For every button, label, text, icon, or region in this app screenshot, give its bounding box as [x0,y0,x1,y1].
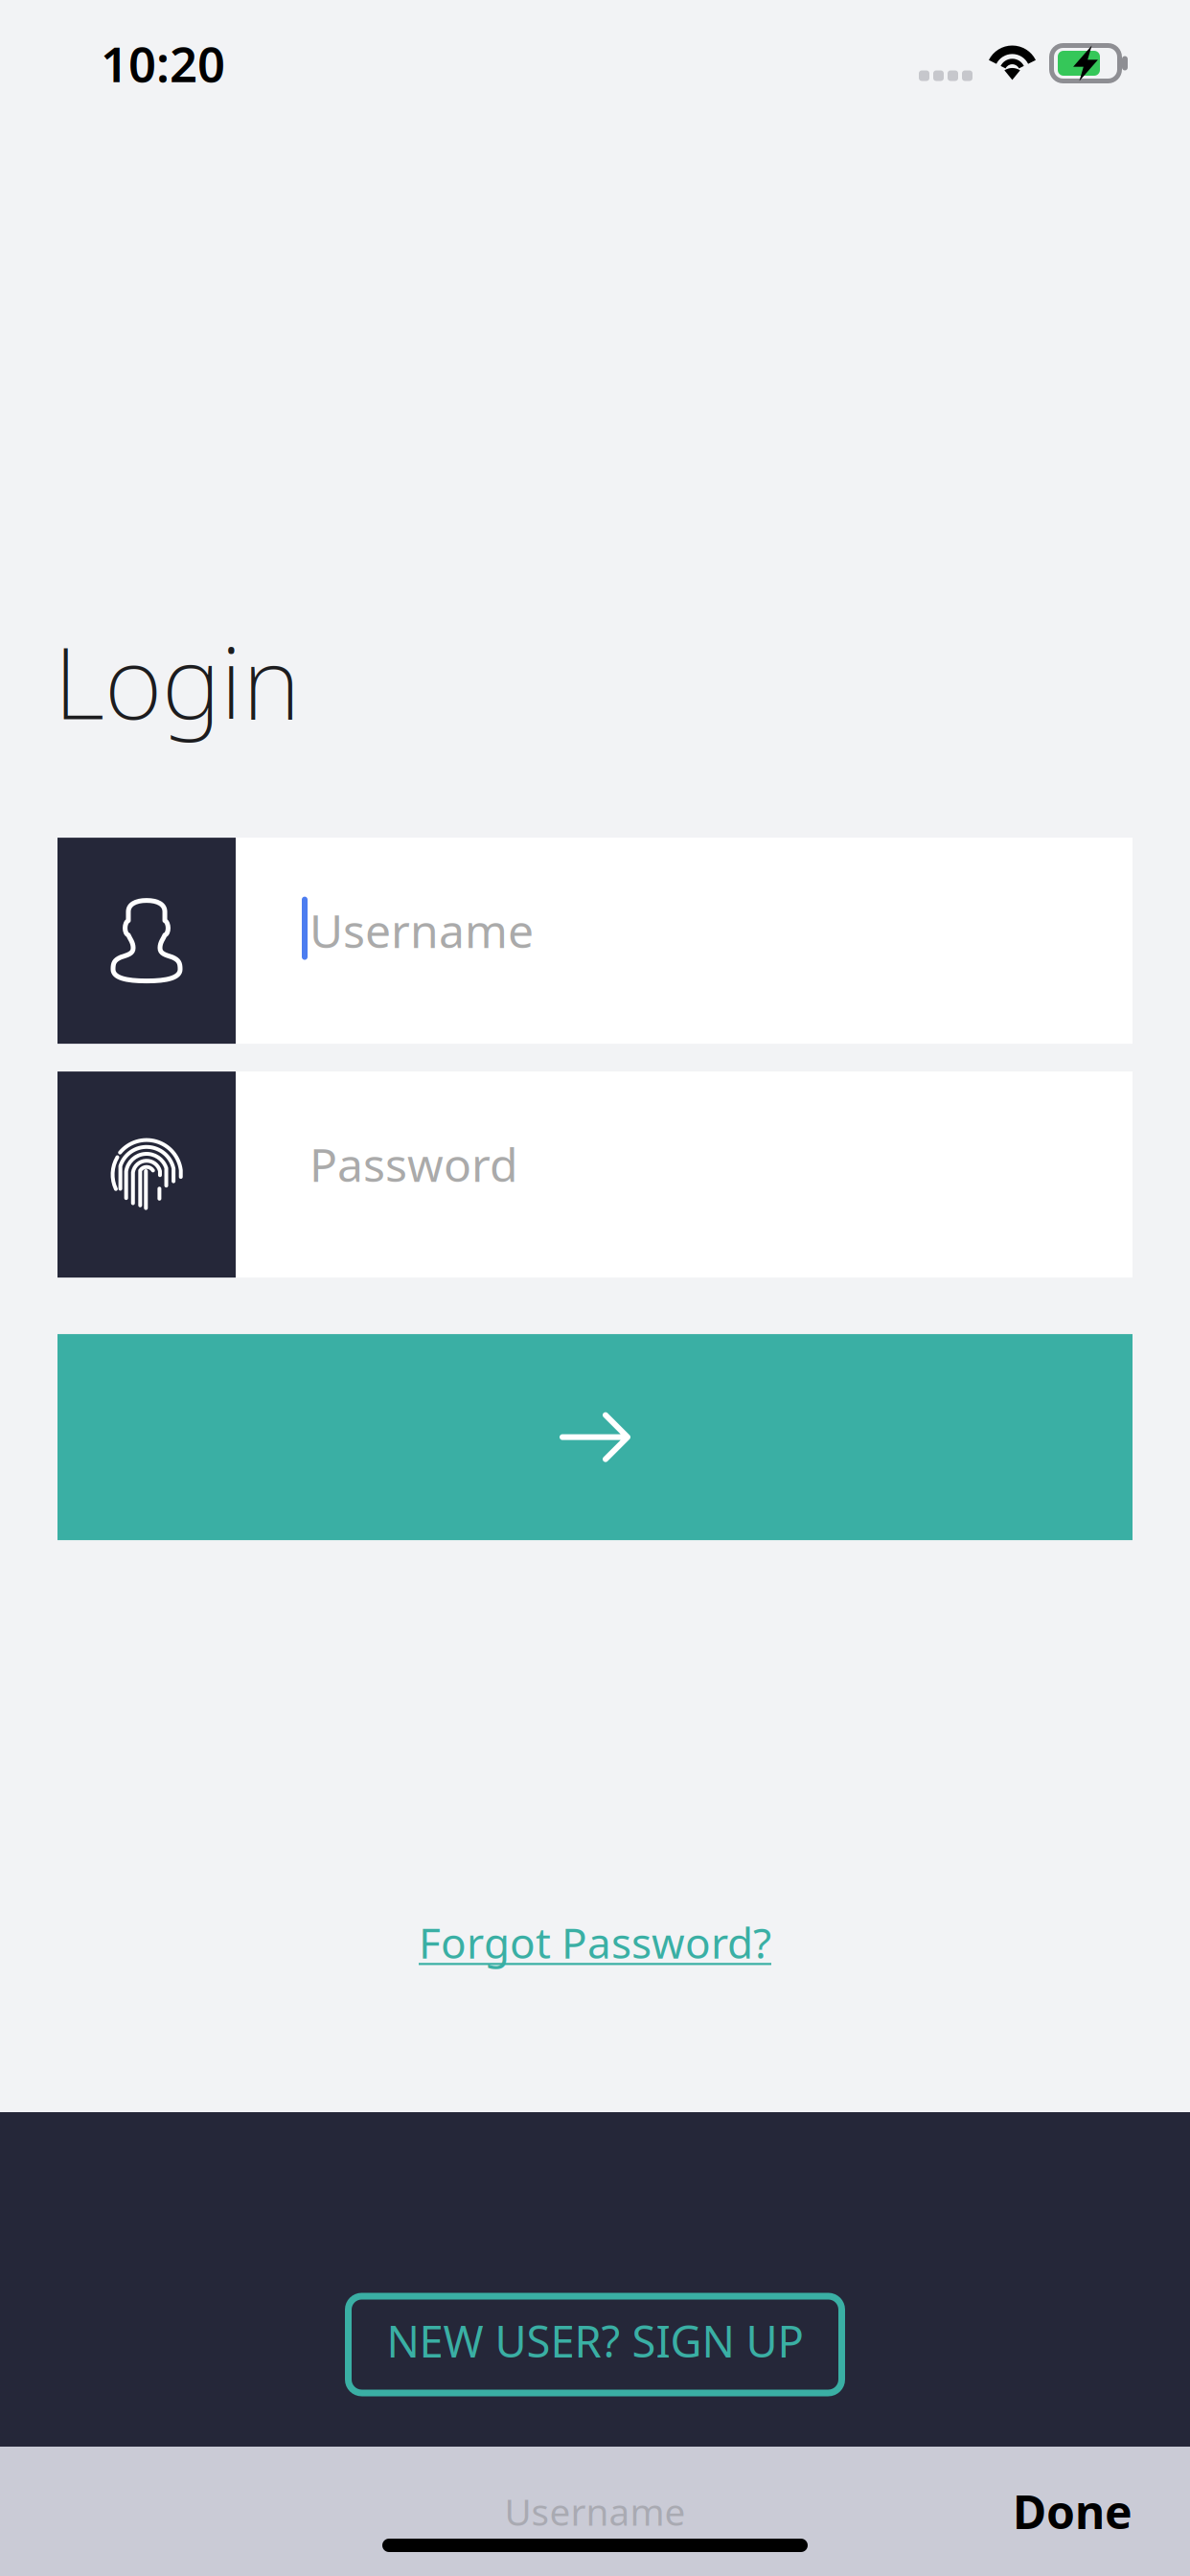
staticText: Password [309,1133,518,1194]
staticText: NEW USER? SIGN UP [387,2312,803,2370]
button[interactable]: Forgot Password? [419,1914,771,1970]
button[interactable]: Done [1013,2481,1133,2542]
staticText: Username [309,900,534,961]
staticText: Login [54,614,301,747]
button[interactable]: NEW USER? SIGN UP [348,2296,842,2393]
staticText: Done [1013,2481,1133,2542]
button[interactable]: Sign in [57,1334,1133,1540]
staticText: Username [504,2487,686,2536]
staticText: Forgot Password? [419,1914,771,1970]
staticText: 10:20 [101,31,225,96]
